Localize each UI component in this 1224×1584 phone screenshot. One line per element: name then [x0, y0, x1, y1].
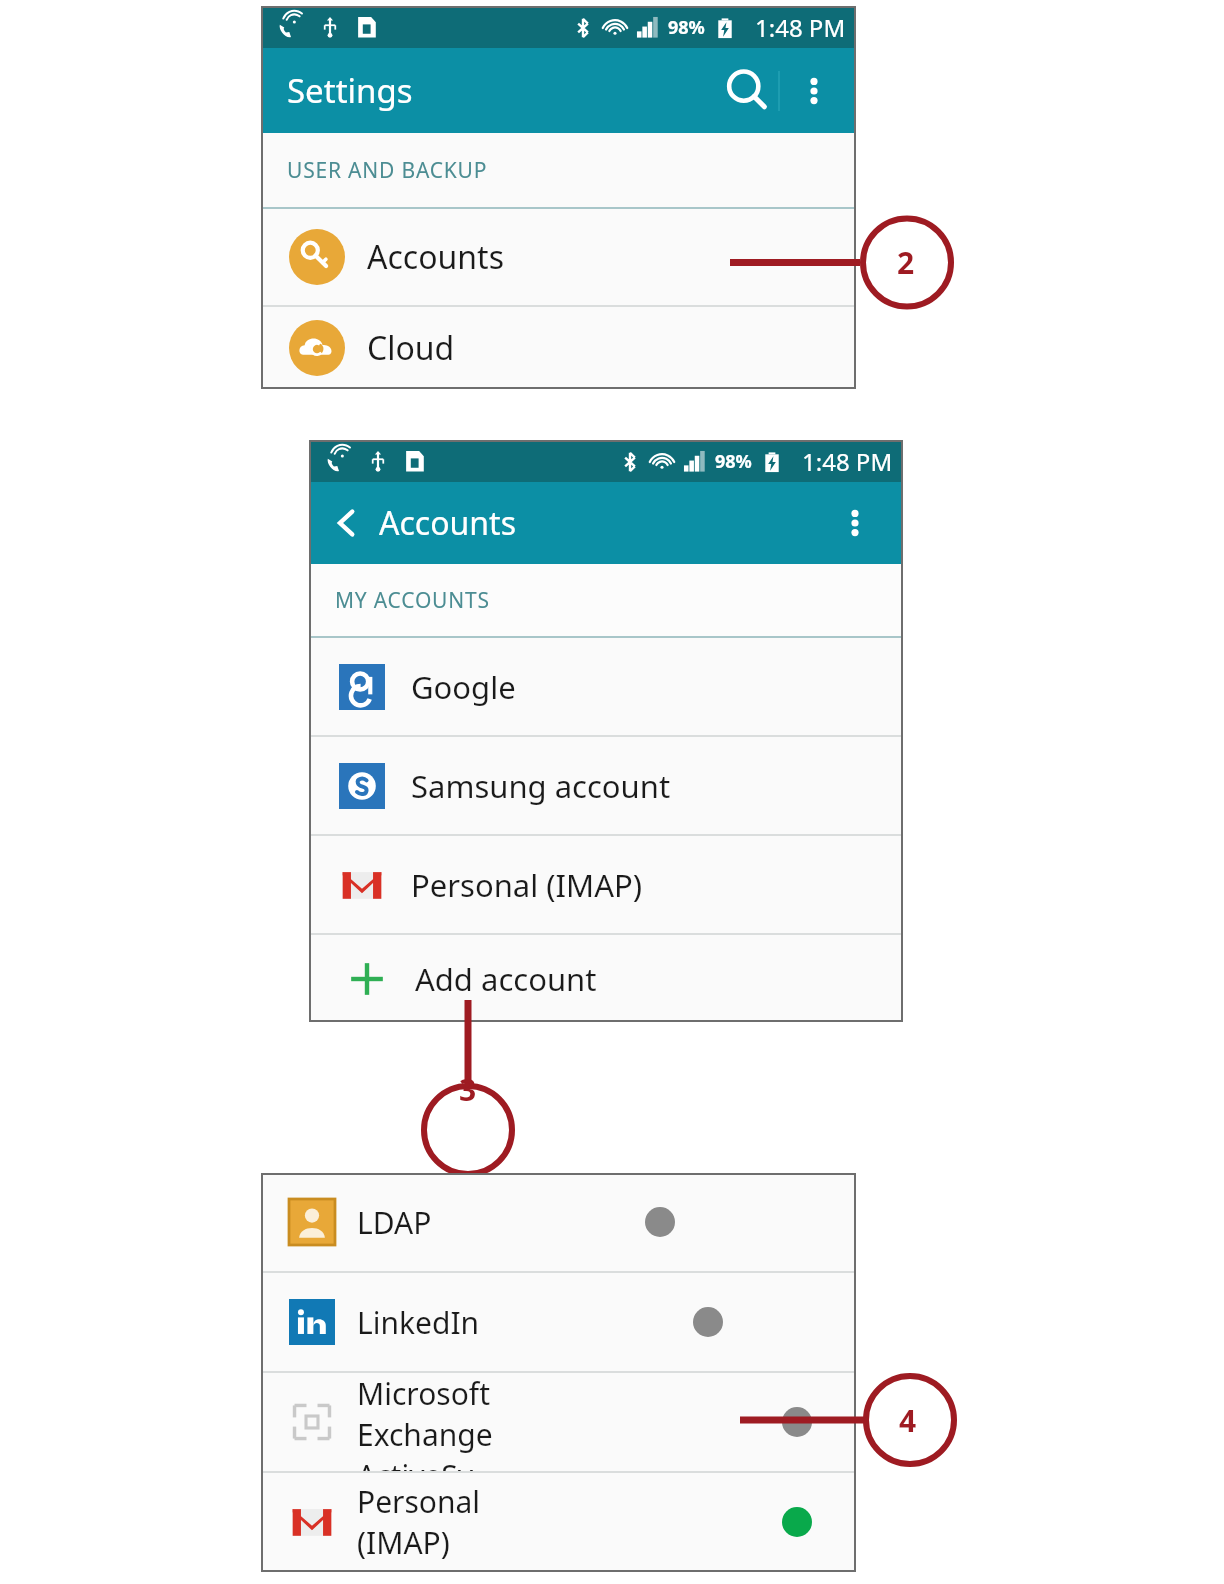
button[interactable]: Cloud: [261, 307, 856, 389]
staticText: LinkedIn: [357, 1302, 480, 1343]
staticText: Personal (IMAP): [411, 864, 643, 906]
staticText: Accounts: [367, 235, 504, 279]
staticText: 98%: [715, 449, 752, 474]
staticText: 1:48 PM: [755, 11, 846, 44]
button[interactable]: Microsoft Exchange ActiveSy..: [261, 1373, 856, 1471]
button[interactable]: More options: [790, 67, 838, 115]
staticText: Personal (IMAP): [357, 1481, 569, 1563]
button[interactable]: Personal (IMAP): [261, 1473, 856, 1571]
staticText: 3: [459, 1069, 477, 1110]
staticText: LDAP: [357, 1202, 432, 1243]
staticText: Google: [411, 666, 516, 708]
button[interactable]: Add account: [309, 935, 903, 1022]
staticText: MY ACCOUNTS: [335, 586, 490, 615]
staticText: 98%: [668, 15, 705, 40]
other: Back: [325, 501, 369, 545]
button[interactable]: LDAP: [261, 1173, 856, 1271]
staticText: USER AND BACKUP: [287, 156, 488, 185]
button[interactable]: Personal (IMAP): [309, 836, 903, 933]
button[interactable]: Google: [309, 638, 903, 735]
staticText: Add account: [415, 958, 597, 1000]
staticText: Samsung account: [411, 765, 671, 807]
button[interactable]: Samsung account: [309, 737, 903, 834]
staticText: 2: [897, 242, 915, 283]
button[interactable]: LinkedIn: [261, 1273, 856, 1371]
button[interactable]: Search: [720, 64, 774, 118]
staticText: 1:48 PM: [802, 445, 893, 478]
staticText: Microsoft Exchange ActiveSy..: [357, 1373, 569, 1471]
staticText: Cloud: [367, 326, 455, 370]
staticText: 4: [899, 1400, 917, 1441]
button[interactable]: Accounts: [261, 209, 856, 305]
button[interactable]: Back: [325, 501, 516, 545]
staticText: Accounts: [379, 501, 516, 545]
button[interactable]: More options: [831, 499, 879, 547]
staticText: Settings: [287, 68, 413, 113]
